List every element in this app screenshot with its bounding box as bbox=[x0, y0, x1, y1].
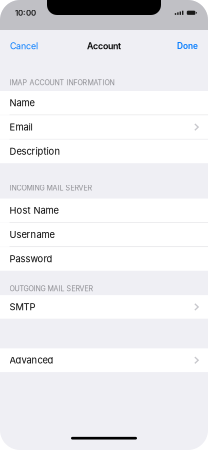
button[interactable]: Username bbox=[0, 223, 208, 246]
staticText: Description bbox=[9, 146, 60, 157]
staticText: INCOMING MAIL SERVER bbox=[9, 184, 92, 192]
staticText: Username bbox=[9, 229, 54, 240]
button[interactable]: Cancel bbox=[9, 36, 39, 56]
button[interactable]: Name bbox=[0, 91, 208, 115]
staticText: Password bbox=[9, 253, 52, 264]
staticText: SMTP bbox=[9, 301, 35, 313]
staticText: Account bbox=[87, 41, 121, 51]
button[interactable]: SMTP bbox=[0, 295, 208, 319]
staticText: Host Name bbox=[9, 205, 58, 216]
button[interactable]: Host Name bbox=[0, 198, 208, 222]
staticText: Name bbox=[9, 97, 34, 108]
button[interactable]: Email bbox=[0, 115, 208, 139]
staticText: OUTGOING MAIL SERVER bbox=[9, 284, 93, 293]
button[interactable]: Done bbox=[176, 36, 199, 56]
staticText: Email bbox=[9, 121, 32, 133]
staticText: 10:00 bbox=[15, 8, 36, 17]
staticText: IMAP ACCOUNT INFORMATION bbox=[9, 78, 114, 87]
button[interactable]: Advanced bbox=[0, 348, 208, 372]
staticText: Cancel bbox=[10, 41, 38, 51]
staticText: Advanced bbox=[9, 355, 53, 366]
staticText: Done bbox=[177, 41, 198, 51]
button[interactable]: Password bbox=[0, 247, 208, 271]
button[interactable]: Description bbox=[0, 139, 208, 163]
